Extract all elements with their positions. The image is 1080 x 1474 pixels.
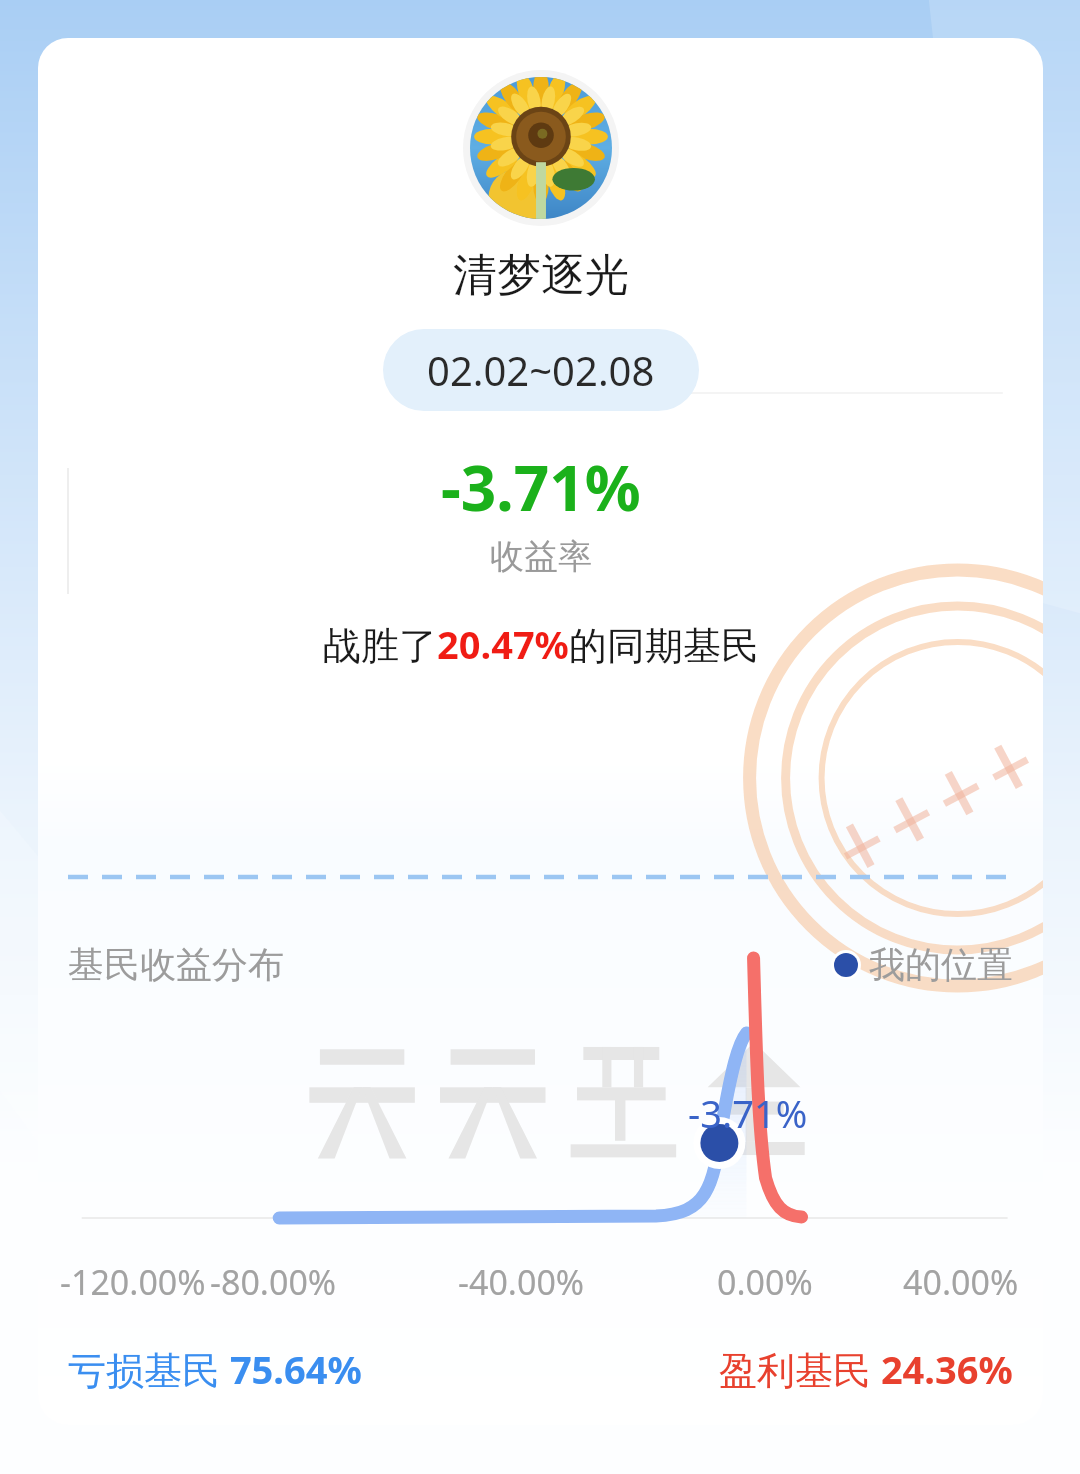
button[interactable]: 我的位置 xyxy=(831,942,1013,987)
staticText: 40.00% xyxy=(903,1259,1019,1305)
staticText: -3.71% xyxy=(688,1087,808,1139)
staticText: -40.00% xyxy=(458,1259,585,1305)
staticText: 战胜了20.47%的同期基民 xyxy=(323,618,759,670)
staticText: 0.00% xyxy=(717,1259,813,1305)
button[interactable]: 头像 xyxy=(463,70,619,226)
staticText: -3.71% xyxy=(441,445,641,529)
staticText: 02.02~02.08 xyxy=(427,343,655,397)
staticText: 亏损基民 75.64% xyxy=(68,1343,362,1395)
staticText: 收益率 xyxy=(490,535,592,578)
staticText: -120.00% xyxy=(60,1259,206,1305)
staticText: 基民收益分布 xyxy=(68,942,284,987)
staticText: 清梦逐光 xyxy=(453,248,629,303)
staticText: 我的位置 xyxy=(869,942,1013,987)
staticText: -80.00% xyxy=(210,1259,337,1305)
button[interactable]: 02.02~02.08 xyxy=(383,329,699,411)
staticText: 盈利基民 24.36% xyxy=(719,1343,1013,1395)
